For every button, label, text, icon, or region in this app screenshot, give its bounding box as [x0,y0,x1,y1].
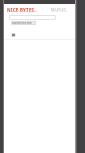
button[interactable]: Search this site [11,21,36,25]
staticText: LOOPS BEATS [51,10,68,13]
staticText: MUSIC [51,7,67,12]
staticText: SAMPLES . LOOPS . BEATS [7,10,37,13]
button[interactable]: Menu [11,33,16,37]
staticText: NICE BYTES [7,7,35,13]
staticText: Search this site [12,21,32,25]
